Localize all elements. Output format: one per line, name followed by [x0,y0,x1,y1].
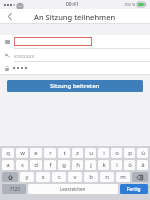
button[interactable]: ö [124,160,135,170]
button[interactable]: n [100,172,114,182]
button[interactable]: .?123 [2,184,26,194]
button[interactable]: h [72,160,83,170]
button[interactable]: p [124,148,135,158]
staticText: v [73,173,77,181]
staticText: n [105,173,109,181]
button[interactable]: w [16,148,28,158]
staticText: l [116,161,118,169]
staticText: 09:41 [66,1,79,8]
button[interactable]: y [20,172,34,182]
staticText: Fertig [127,186,141,193]
staticText: f [49,161,52,169]
button[interactable]: u [85,148,96,158]
button[interactable]: d [30,160,42,170]
button[interactable]: Taste [132,172,148,182]
staticText: 100 % [124,2,136,7]
staticText: ö [128,161,132,169]
staticText: t [63,149,66,157]
staticText: u [89,149,93,157]
staticText: h [76,161,80,169]
button[interactable]: ä [137,160,148,170]
button[interactable]: z [72,148,83,158]
staticText: Sitzung beitreten [50,82,100,90]
staticText: o [115,149,119,157]
button[interactable] [0,62,150,74]
button[interactable]: s [16,160,28,170]
staticText: y [25,173,29,181]
button[interactable]: k [98,160,109,170]
button[interactable]: Fertig [120,184,148,194]
button[interactable]: xxxxxxx [0,49,150,61]
staticText: i [103,149,105,157]
staticText: m [120,173,126,181]
button[interactable]: t [58,148,70,158]
button[interactable]: Taste [2,172,18,182]
button[interactable]: q [2,148,14,158]
button[interactable]: e [30,148,42,158]
button[interactable]: c [52,172,66,182]
button[interactable]: a [2,160,14,170]
button[interactable]: m [116,172,130,182]
staticText: a [6,161,10,169]
button[interactable]: l [111,160,122,170]
staticText: .?123 [9,186,20,192]
staticText: c [58,173,61,181]
button[interactable]: v [68,172,82,182]
staticText: d [34,161,38,169]
staticText: p [128,149,132,157]
staticText: b [89,173,93,181]
staticText: g [62,161,66,169]
staticText: ü [141,149,145,157]
button[interactable]: Zurück [0,9,20,24]
staticText: ä [141,161,145,169]
staticText: xxxxxxx [14,52,35,59]
staticText: k [102,161,106,169]
button[interactable]: Leerzeichen [28,184,118,194]
button[interactable]: x [36,172,50,182]
staticText: s [21,161,24,169]
staticText: j [90,161,92,169]
staticText: An Sitzung teilnehmen [34,12,116,22]
button[interactable]: o [111,148,122,158]
button[interactable]: ü [137,148,148,158]
button[interactable]: Sitzung beitreten [7,80,143,92]
staticText: w [20,149,25,157]
button[interactable]: f [44,160,56,170]
button[interactable] [0,35,150,48]
staticText: r [49,149,52,157]
button[interactable]: g [58,160,70,170]
staticText: e [34,149,38,157]
staticText: z [76,149,79,157]
button[interactable]: b [84,172,98,182]
button[interactable]: r [44,148,56,158]
button[interactable]: j [85,160,96,170]
staticText: q [6,149,10,157]
button[interactable]: i [98,148,109,158]
staticText: x [41,173,45,181]
staticText: Leerzeichen [60,186,86,192]
